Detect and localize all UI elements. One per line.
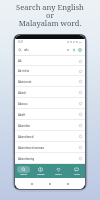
button[interactable]: Ab initio (18, 66, 82, 76)
staticText: Search any English or Malayalam word. (16, 2, 84, 29)
button[interactable]: Clear (66, 48, 70, 52)
button[interactable]: Saved (49, 164, 67, 178)
staticText: 86 (79, 40, 82, 43)
staticText: Saved (55, 173, 62, 176)
staticText: Search (20, 173, 28, 176)
other: Search (18, 48, 22, 52)
button[interactable]: History (32, 164, 49, 178)
staticText: Aback (18, 91, 27, 95)
staticText: 9:41 (18, 40, 24, 44)
button[interactable]: Search (15, 164, 32, 178)
button[interactable]: Aback (18, 87, 82, 98)
staticText: Abacinate (18, 80, 32, 84)
staticText: ab (24, 47, 29, 52)
button[interactable]: Abacus (18, 98, 82, 109)
staticText: Abaft (18, 113, 26, 117)
staticText: Abacus (18, 102, 28, 106)
staticText: Ab (18, 59, 22, 63)
button[interactable]: Abandoning (18, 153, 82, 164)
staticText: History (37, 173, 45, 176)
button[interactable]: Search (18, 44, 82, 55)
button[interactable]: Abandoned (18, 131, 82, 142)
staticText: Abandoning (18, 157, 35, 161)
staticText: Abandoned woman (18, 146, 45, 150)
button[interactable]: Abacinate (18, 76, 82, 87)
button[interactable]: Ab (18, 56, 82, 66)
button[interactable]: More (67, 164, 85, 178)
staticText: Abandon (18, 124, 31, 128)
button[interactable]: Search by image (78, 48, 82, 52)
staticText: Ab initio (18, 69, 30, 73)
button[interactable]: Abaft (18, 109, 82, 120)
staticText: Abandoned (18, 135, 34, 139)
button[interactable]: Abandoned woman (18, 142, 82, 153)
staticText: More (74, 173, 80, 176)
button[interactable]: Abandon (18, 120, 82, 131)
button[interactable]: Voice search (72, 48, 76, 52)
